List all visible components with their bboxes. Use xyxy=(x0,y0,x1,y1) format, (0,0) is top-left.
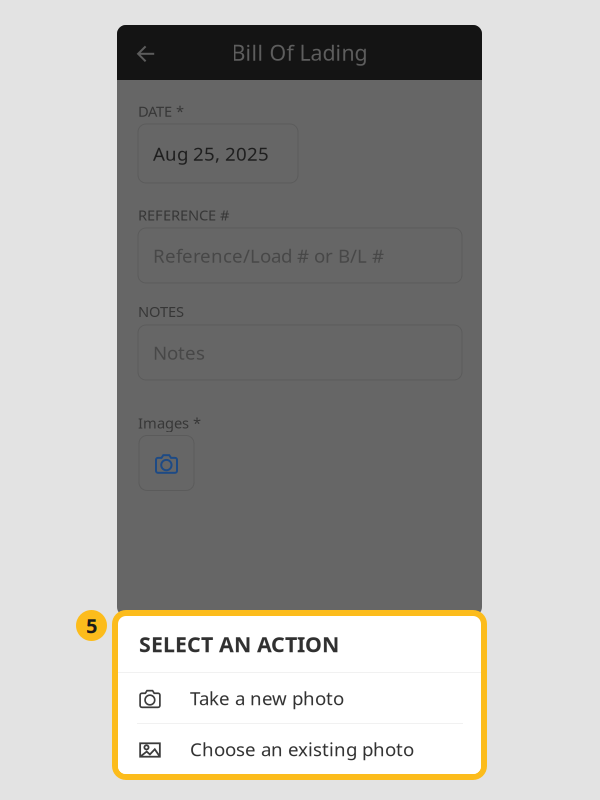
staticText: NOTES xyxy=(138,302,184,321)
staticText: Reference/Load # or B/L # xyxy=(153,243,384,268)
staticText: Notes xyxy=(153,340,205,365)
staticText: Bill Of Lading xyxy=(231,38,367,67)
staticText: Choose an existing photo xyxy=(190,737,414,761)
staticText: SELECT AN ACTION xyxy=(139,630,339,658)
button[interactable]: Back xyxy=(123,31,169,77)
button[interactable]: Choose an existing photo xyxy=(118,724,481,774)
staticText: Aug 25, 2025 xyxy=(153,141,269,166)
button[interactable]: Take a new photo xyxy=(118,673,481,723)
staticText: Images * xyxy=(138,413,201,432)
staticText: 5 xyxy=(86,612,97,639)
staticText: Take a new photo xyxy=(190,686,344,710)
staticText: DATE * xyxy=(138,101,184,121)
button[interactable]: Add photo xyxy=(139,435,194,490)
staticText: REFERENCE # xyxy=(138,205,229,224)
